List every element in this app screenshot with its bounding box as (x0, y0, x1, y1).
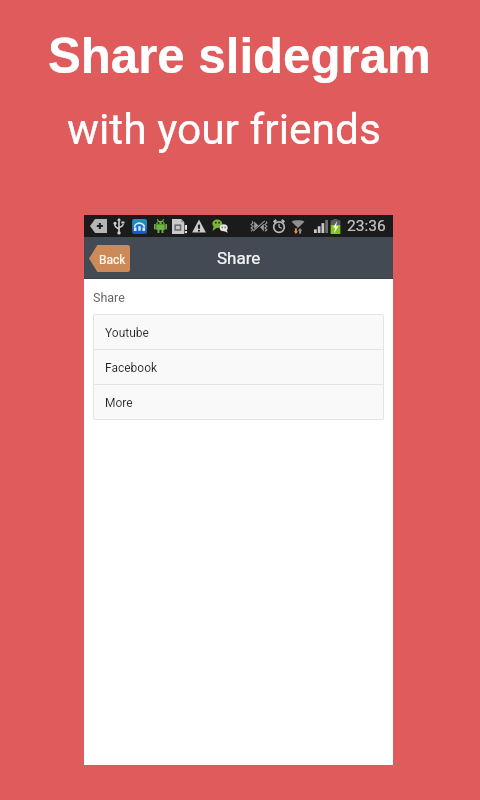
staticText: 23:36 (347, 217, 386, 235)
button[interactable]: More (94, 385, 383, 419)
button[interactable]: Facebook (94, 350, 383, 384)
staticText: Back (99, 253, 126, 267)
staticText: More (105, 396, 133, 410)
staticText: Share (93, 290, 125, 305)
button[interactable]: Youtube (94, 315, 383, 349)
button[interactable]: Back (89, 245, 130, 272)
staticText: with your friends (67, 105, 381, 155)
staticText: Share slidegram (48, 28, 431, 83)
staticText: Youtube (105, 326, 149, 340)
staticText: Share (217, 248, 261, 268)
staticText: Facebook (105, 361, 158, 375)
